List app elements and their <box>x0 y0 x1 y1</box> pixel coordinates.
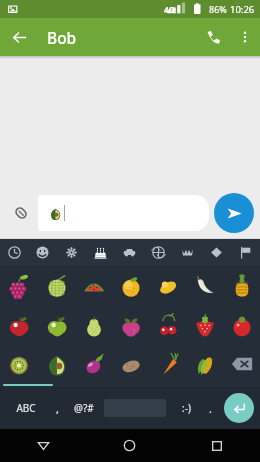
staticText: . <box>209 401 212 416</box>
button[interactable]: carrot <box>149 344 186 383</box>
button[interactable]: watermelon <box>75 266 112 305</box>
button[interactable]: banana <box>186 266 223 305</box>
button[interactable]: lemon <box>149 266 186 305</box>
button[interactable]: . <box>200 387 220 429</box>
button[interactable]: kiwi <box>0 344 38 383</box>
staticText: :-) <box>182 401 191 415</box>
staticText: , <box>56 401 59 416</box>
button[interactable]: melon <box>38 266 75 305</box>
button[interactable]: Smileys <box>28 239 57 266</box>
button[interactable]: potato <box>112 344 149 383</box>
button[interactable]: @?# <box>68 387 100 429</box>
button[interactable]: corn <box>186 344 223 383</box>
button[interactable]: Travel <box>115 239 144 266</box>
button[interactable]: Symbols <box>202 239 231 266</box>
button[interactable]: Objects <box>173 239 202 266</box>
staticText: 86% <box>209 3 227 15</box>
button[interactable]: red apple <box>0 305 38 344</box>
button[interactable] <box>38 195 209 231</box>
button[interactable]: Backspace <box>223 344 260 383</box>
button[interactable]: strawberry <box>186 305 223 344</box>
button[interactable]: pineapple <box>223 266 260 305</box>
button[interactable]: Food <box>86 239 115 266</box>
button[interactable]: Back <box>0 18 38 56</box>
staticText: Bob <box>47 27 77 48</box>
button[interactable]: avocado <box>38 344 75 383</box>
button[interactable]: ABC <box>6 387 46 429</box>
button[interactable]: Call <box>196 20 230 54</box>
button[interactable]: Enter <box>224 393 254 423</box>
button[interactable]: :-) <box>172 387 200 429</box>
staticText: ABC <box>16 401 36 415</box>
button[interactable]: Home <box>86 429 173 462</box>
button[interactable]: Activity <box>144 239 173 266</box>
staticText: 4G <box>164 4 175 15</box>
button[interactable]: Back <box>0 429 86 462</box>
button[interactable]: cherries <box>149 305 186 344</box>
button[interactable]: Recents <box>173 429 260 462</box>
button[interactable]: Flags <box>231 239 260 266</box>
button[interactable]: eggplant <box>75 344 112 383</box>
button[interactable]: , <box>46 387 68 429</box>
button[interactable]: pear <box>75 305 112 344</box>
button[interactable]: Attach <box>6 198 36 228</box>
button[interactable]: tangerine <box>112 266 149 305</box>
button[interactable]: Recent <box>0 239 28 266</box>
staticText: @?# <box>74 401 94 415</box>
button[interactable]: peach <box>112 305 149 344</box>
button[interactable]: Nature <box>57 239 86 266</box>
button[interactable]: Send <box>214 193 254 233</box>
button[interactable]: green apple <box>38 305 75 344</box>
button[interactable]: More options <box>230 22 260 52</box>
staticText: 10:26 <box>230 3 255 16</box>
button[interactable]: tomato <box>223 305 260 344</box>
button[interactable]: grapes <box>0 266 38 305</box>
